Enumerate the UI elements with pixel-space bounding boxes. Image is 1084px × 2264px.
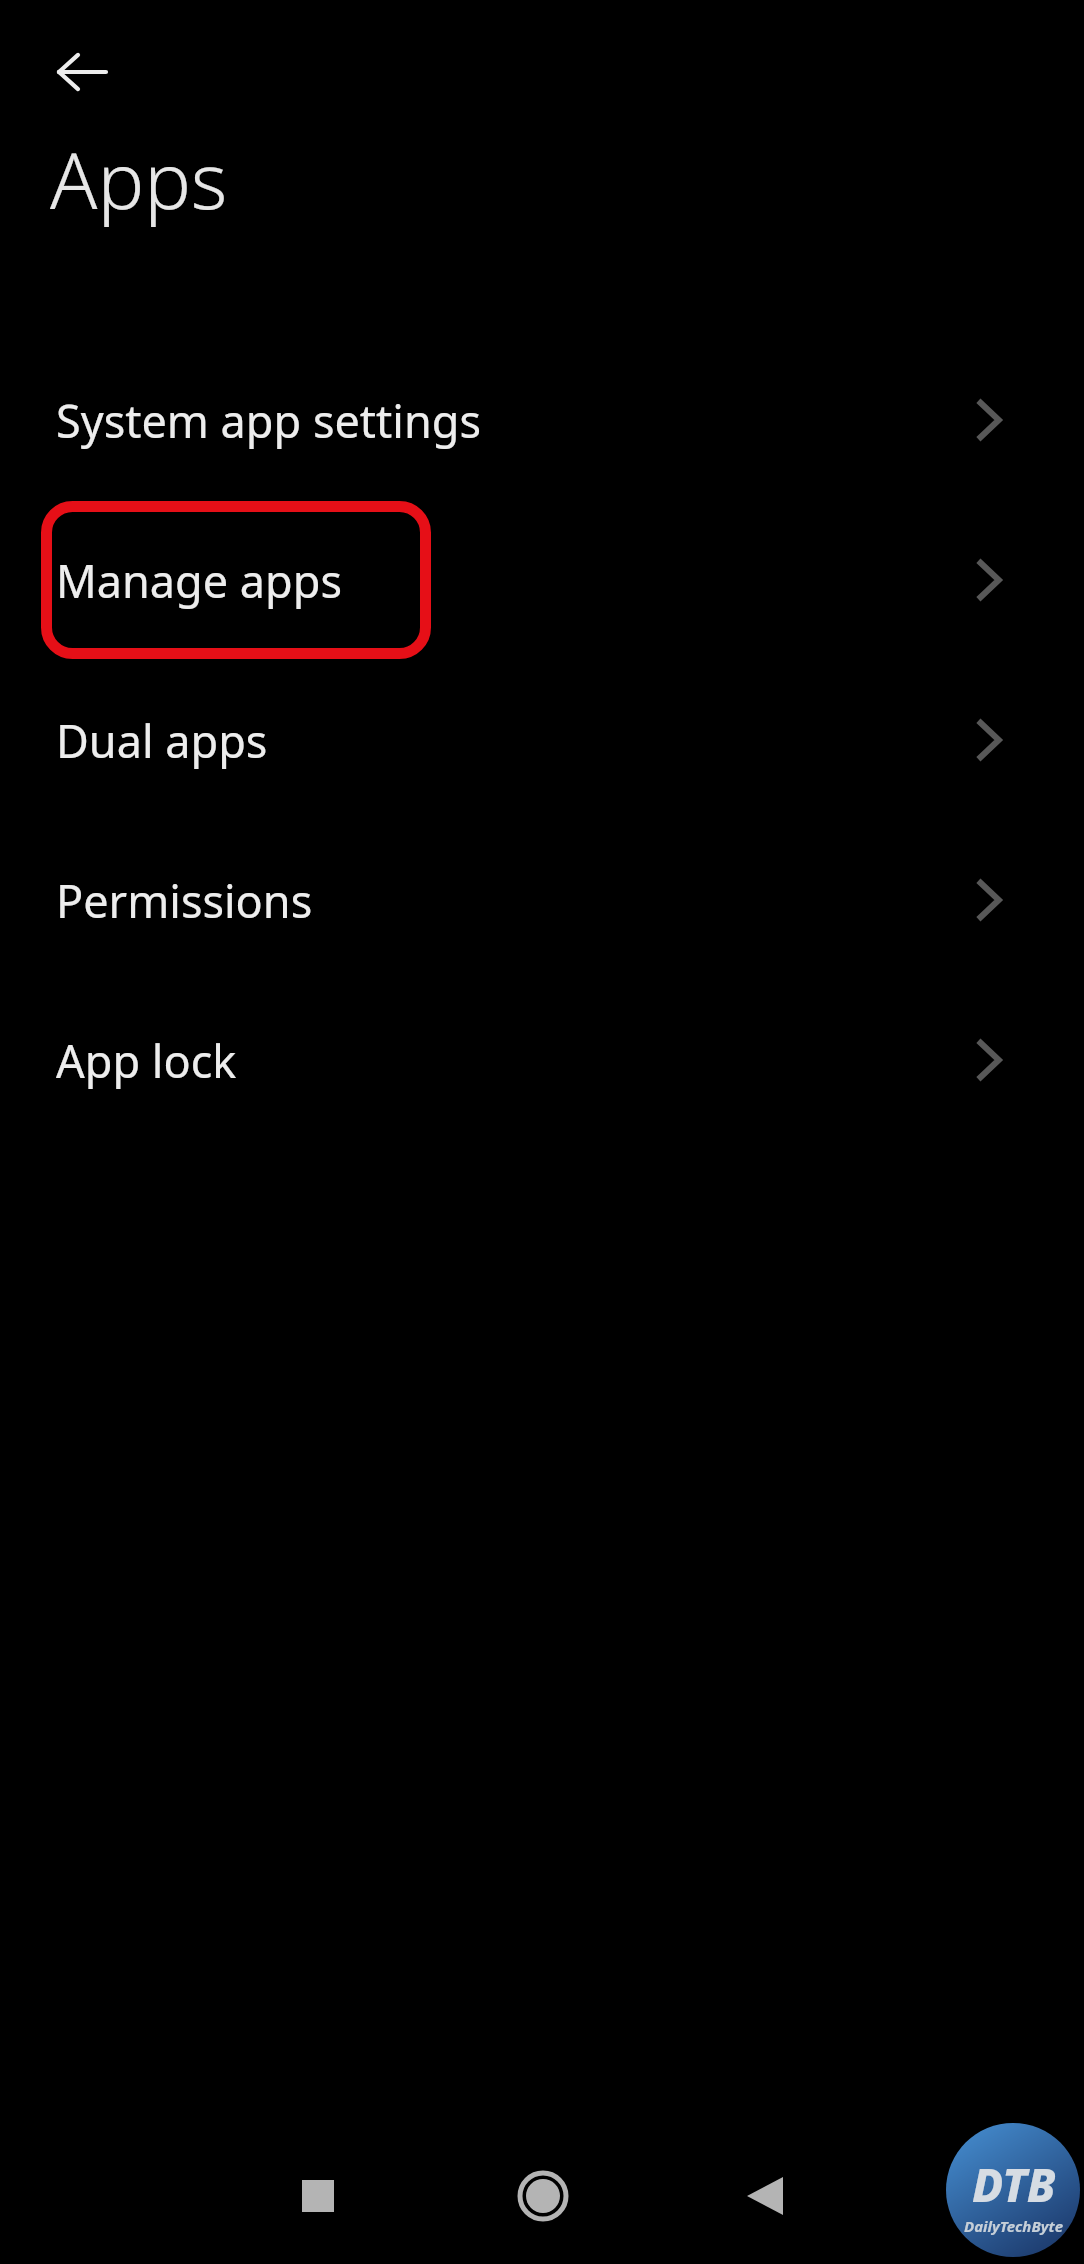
button[interactable]: Recent apps [270, 2148, 366, 2244]
button[interactable]: Dual apps [0, 686, 1084, 794]
button[interactable]: Manage apps [0, 526, 1084, 634]
button[interactable]: System app settings [0, 366, 1084, 474]
button[interactable]: Permissions [0, 846, 1084, 954]
staticText: Dual apps [56, 710, 268, 771]
button[interactable]: Back [36, 26, 128, 118]
staticText: DTB [972, 2153, 1056, 2216]
button[interactable]: App lock [0, 1006, 1084, 1114]
button[interactable]: Home [495, 2148, 591, 2244]
staticText: DailyTechByte [964, 2216, 1063, 2236]
button[interactable]: Back [717, 2148, 813, 2244]
staticText: Manage apps [56, 550, 343, 611]
staticText: Permissions [56, 870, 313, 931]
staticText: App lock [56, 1030, 237, 1091]
staticText: System app settings [56, 390, 481, 451]
staticText: Apps [50, 126, 228, 232]
